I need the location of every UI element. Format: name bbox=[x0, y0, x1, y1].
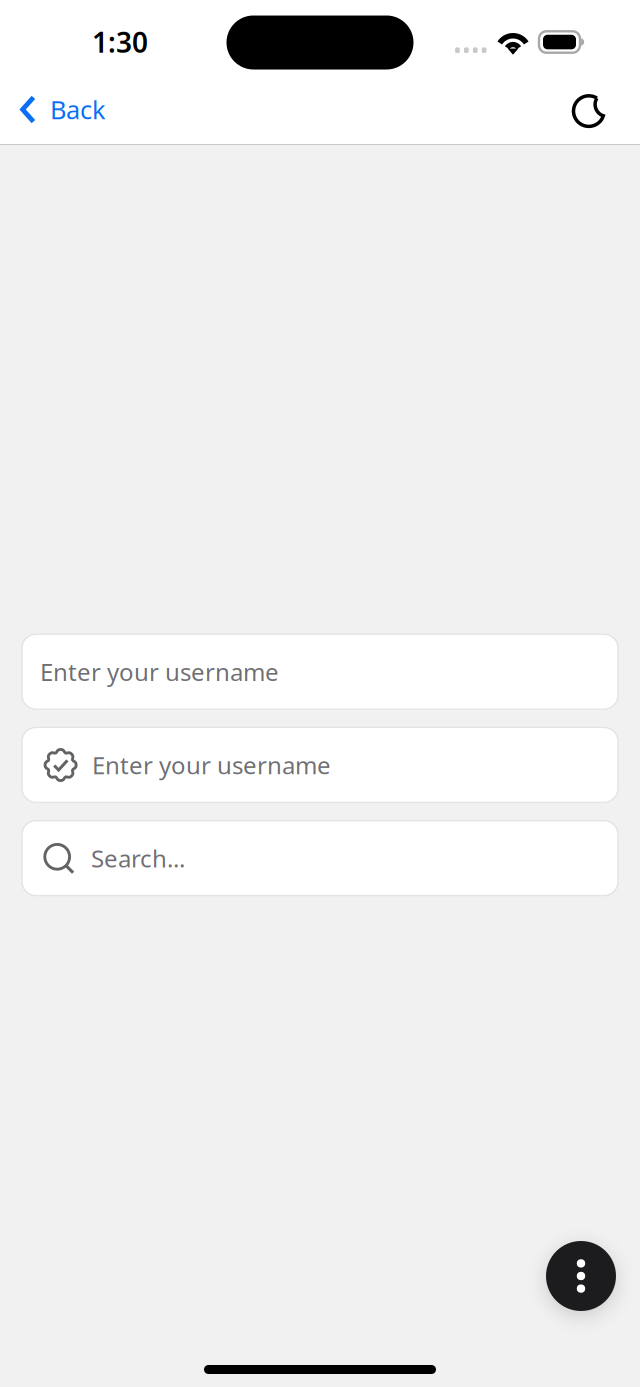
button[interactable]: Enter your username bbox=[22, 634, 618, 709]
button[interactable]: Search... bbox=[22, 821, 618, 896]
staticText: Enter your username bbox=[40, 656, 279, 688]
staticText: Search... bbox=[91, 842, 185, 874]
button[interactable]: Dark mode bbox=[572, 75, 640, 143]
staticText: 1:30 bbox=[92, 23, 148, 61]
staticText: Back bbox=[50, 93, 106, 126]
button[interactable]: Back bbox=[0, 75, 118, 143]
staticText: Enter your username bbox=[92, 749, 331, 781]
button[interactable]: More options bbox=[546, 1241, 616, 1311]
button[interactable]: Enter your username bbox=[22, 727, 618, 802]
